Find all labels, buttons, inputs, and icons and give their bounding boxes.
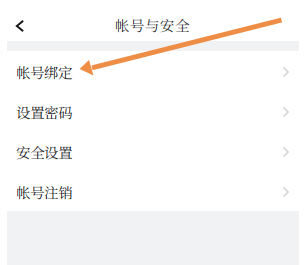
staticText: 安全设置 (16, 142, 72, 162)
button[interactable]: 帐号注销 (7, 171, 299, 211)
staticText: 帐号注销 (16, 182, 72, 202)
button[interactable]: Back (0, 0, 40, 41)
button[interactable]: 帐号绑定 (7, 51, 299, 91)
button[interactable]: 安全设置 (7, 131, 299, 171)
button[interactable]: 设置密码 (7, 91, 299, 131)
staticText: 设置密码 (16, 102, 72, 122)
staticText: 帐号与安全 (115, 15, 190, 35)
staticText: 帐号绑定 (16, 62, 72, 82)
